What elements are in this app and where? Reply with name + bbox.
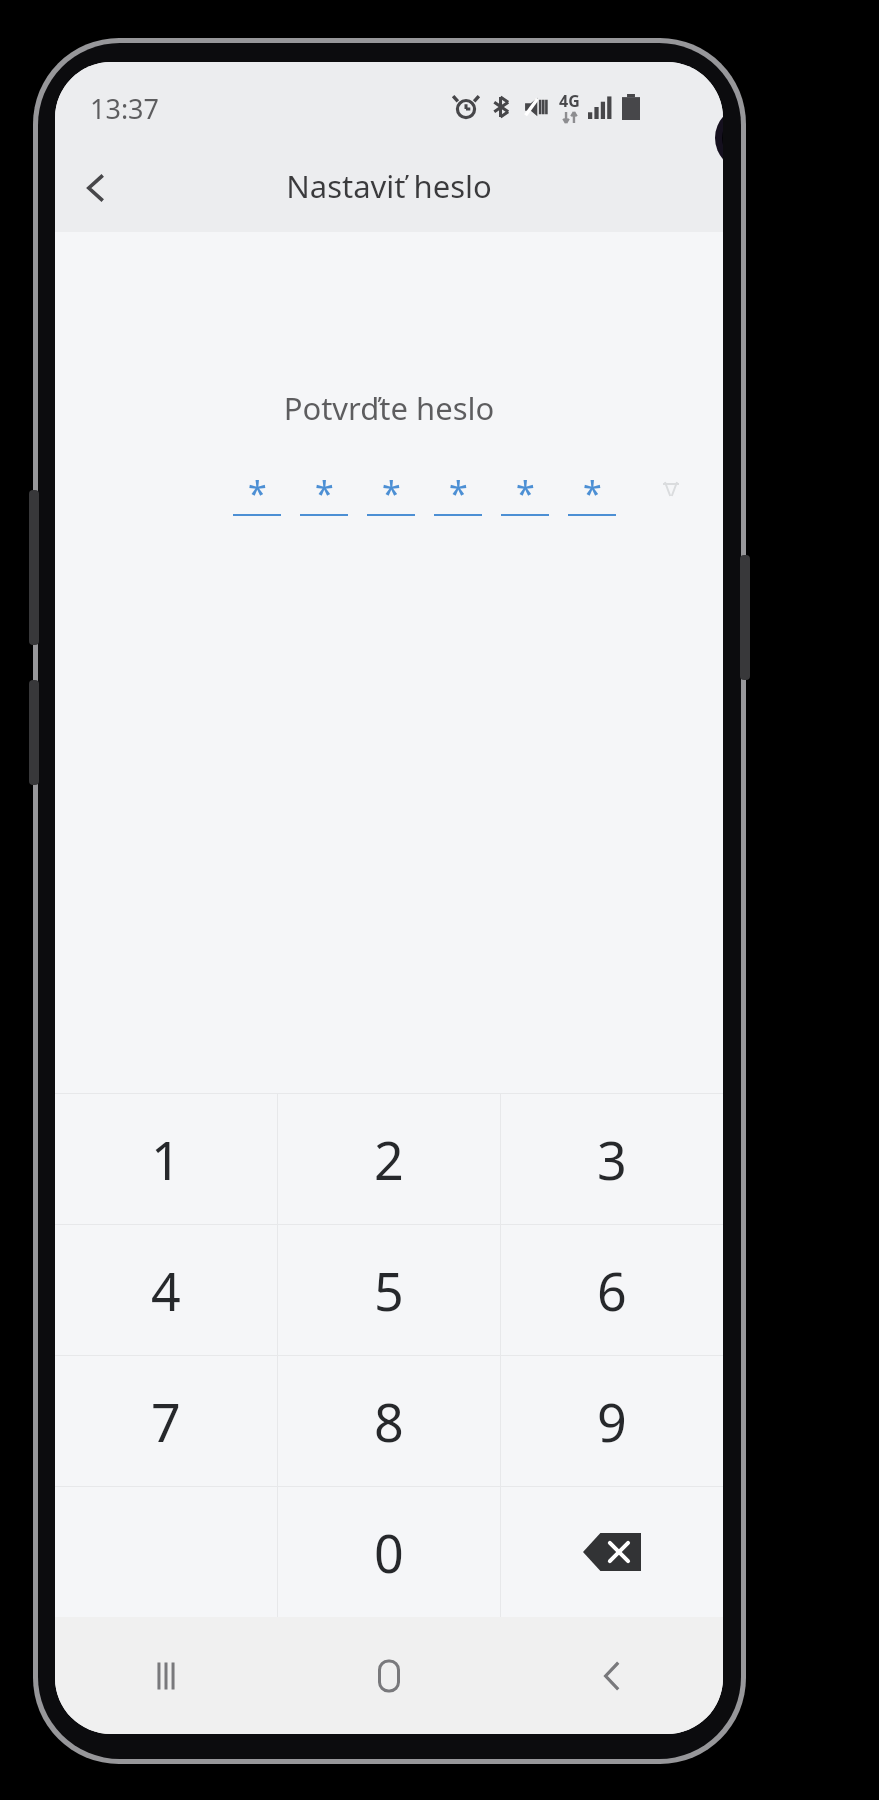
staticText: *: [583, 470, 602, 516]
staticText: 4: [151, 1255, 181, 1326]
staticText: 9: [597, 1386, 627, 1457]
staticText: *: [516, 470, 535, 516]
button[interactable]: 9: [501, 1356, 723, 1486]
button[interactable]: Back: [55, 147, 137, 229]
button[interactable]: Delete: [501, 1487, 723, 1617]
staticText: *: [248, 470, 267, 516]
button[interactable]: Recent apps: [55, 1617, 277, 1734]
button[interactable]: 2: [278, 1094, 500, 1224]
button[interactable]: Back: [500, 1617, 723, 1734]
button[interactable]: 3: [501, 1094, 723, 1224]
staticText: 3: [597, 1124, 627, 1195]
staticText: 6: [597, 1255, 627, 1326]
staticText: 13:37: [90, 90, 160, 127]
button[interactable]: 1: [55, 1094, 277, 1224]
staticText: 0: [374, 1517, 404, 1588]
staticText: Nastaviť heslo: [286, 165, 492, 207]
staticText: 8: [374, 1386, 404, 1457]
staticText: Potvrďte heslo: [55, 387, 723, 429]
button[interactable]: 8: [278, 1356, 500, 1486]
button[interactable]: 7: [55, 1356, 277, 1486]
staticText: *: [315, 470, 334, 516]
staticText: 7: [151, 1386, 181, 1457]
button[interactable]: 0: [278, 1487, 500, 1617]
button[interactable]: 4: [55, 1225, 277, 1355]
staticText: 2: [374, 1124, 404, 1195]
button[interactable]: Home: [277, 1617, 500, 1734]
staticText: 4G: [559, 90, 580, 112]
button[interactable]: 5: [278, 1225, 500, 1355]
button[interactable]: 6: [501, 1225, 723, 1355]
staticText: *: [382, 470, 401, 516]
staticText: *: [449, 470, 468, 516]
staticText: 5: [374, 1255, 404, 1326]
staticText: 1: [151, 1124, 181, 1195]
